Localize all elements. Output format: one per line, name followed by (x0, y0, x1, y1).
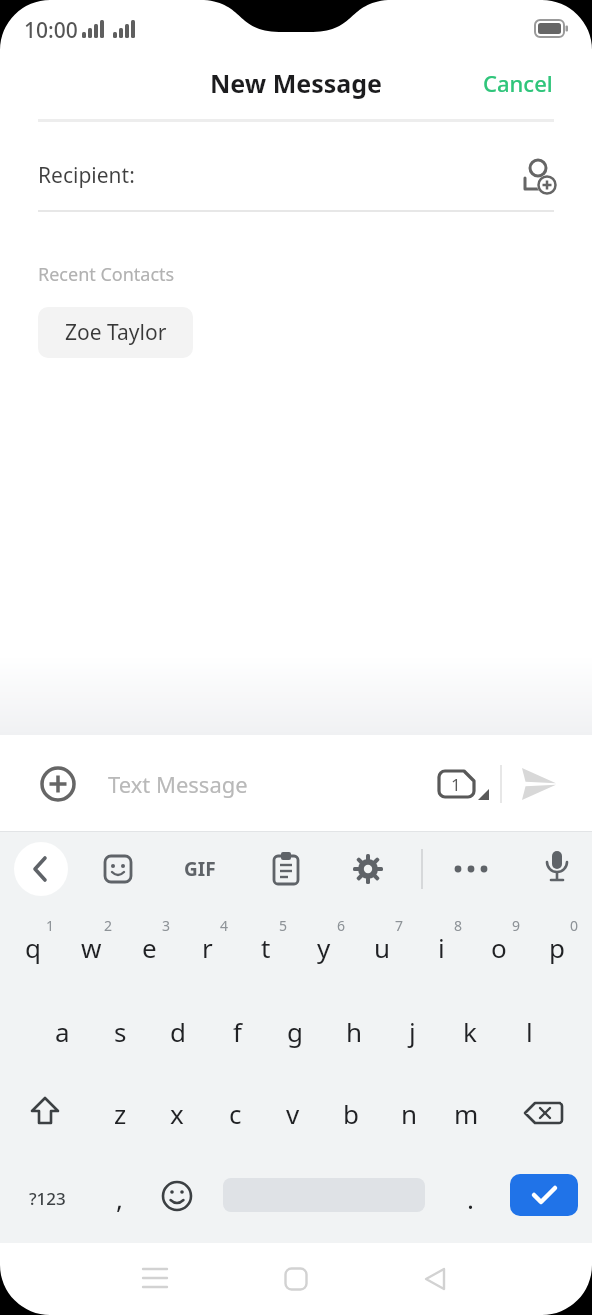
staticText: 2 (104, 916, 113, 935)
staticText: l (526, 1014, 533, 1049)
button[interactable]: o (470, 917, 528, 977)
staticText: 5 (279, 916, 288, 935)
staticText: 4 (220, 916, 229, 935)
staticText: f (233, 1014, 242, 1049)
button[interactable]: v (264, 1083, 322, 1143)
staticText: 1 (451, 773, 461, 796)
button[interactable] (284, 1267, 308, 1291)
staticText: 0 (570, 916, 579, 935)
button[interactable]: i (412, 917, 470, 977)
staticText: d (170, 1014, 186, 1049)
staticText: z (114, 1096, 127, 1131)
staticText: k (463, 1014, 477, 1049)
button[interactable]: Recipient: (30, 148, 562, 203)
button[interactable]: b (322, 1083, 380, 1143)
staticText: GIF (184, 856, 216, 882)
staticText: r (202, 930, 213, 965)
staticText: ?123 (29, 1187, 66, 1210)
button[interactable]: ?123 (14, 1178, 80, 1218)
button[interactable]: c (206, 1083, 264, 1143)
button[interactable] (522, 768, 556, 800)
staticText: 7 (395, 916, 404, 935)
button[interactable]: 1 (437, 768, 491, 802)
staticText: g (287, 1014, 303, 1049)
button[interactable] (353, 854, 383, 884)
button[interactable]: l (500, 1001, 558, 1061)
staticText: n (401, 1096, 418, 1131)
staticText: New Message (210, 66, 382, 100)
button[interactable]: f (208, 1001, 266, 1061)
button[interactable]: k (441, 1001, 499, 1061)
button[interactable] (543, 850, 571, 888)
staticText: Cancel (483, 68, 553, 98)
staticText: . (467, 1181, 474, 1216)
staticText: 8 (454, 916, 463, 935)
button[interactable] (141, 1266, 169, 1290)
button[interactable]: GIF (168, 852, 232, 886)
button[interactable]: , (90, 1168, 148, 1228)
button[interactable]: . (441, 1168, 499, 1228)
button[interactable]: m (437, 1083, 495, 1143)
staticText: p (549, 930, 565, 965)
staticText: x (170, 1096, 184, 1131)
staticText: a (55, 1014, 70, 1049)
staticText: w (81, 930, 102, 965)
staticText: t (261, 930, 271, 965)
staticText: u (374, 930, 391, 965)
button[interactable] (103, 854, 133, 884)
button[interactable]: n (380, 1083, 438, 1143)
button[interactable]: e (120, 917, 178, 977)
button[interactable] (519, 1095, 567, 1131)
button[interactable] (23, 1091, 67, 1135)
staticText: Recent Contacts (38, 262, 175, 287)
staticText: i (438, 930, 445, 965)
staticText: s (114, 1014, 127, 1049)
staticText: m (454, 1096, 479, 1131)
staticText: v (286, 1096, 300, 1131)
button[interactable]: x (148, 1083, 206, 1143)
button[interactable] (518, 156, 556, 194)
button[interactable] (422, 1267, 448, 1291)
staticText: 1 (46, 916, 55, 935)
button[interactable] (452, 861, 492, 877)
button[interactable]: u (353, 917, 411, 977)
button[interactable]: w (62, 917, 120, 977)
button[interactable]: s (91, 1001, 149, 1061)
staticText: Zoe Taylor (65, 318, 167, 347)
button[interactable]: Cancel (443, 60, 553, 106)
button[interactable]: r (178, 917, 236, 977)
staticText: , (116, 1181, 123, 1216)
button[interactable]: p (528, 917, 586, 977)
staticText: Text Message (108, 769, 248, 799)
staticText: b (343, 1096, 359, 1131)
button[interactable] (155, 1174, 199, 1218)
button[interactable]: a (33, 1001, 91, 1061)
button[interactable] (272, 852, 300, 886)
button[interactable] (510, 1174, 578, 1216)
staticText: o (491, 930, 507, 965)
button[interactable]: q (4, 917, 62, 977)
staticText: h (346, 1014, 363, 1049)
button[interactable]: h (325, 1001, 383, 1061)
button[interactable]: Zoe Taylor (38, 307, 193, 358)
staticText: 6 (337, 916, 346, 935)
staticText: 9 (512, 916, 521, 935)
staticText: 10:00 (24, 16, 78, 44)
button[interactable] (14, 842, 68, 896)
button[interactable]: Text Message (108, 735, 358, 832)
staticText: 3 (162, 916, 171, 935)
button[interactable] (40, 766, 76, 802)
button[interactable]: d (149, 1001, 207, 1061)
staticText: q (25, 930, 41, 965)
button[interactable]: t (237, 917, 295, 977)
button[interactable]: g (266, 1001, 324, 1061)
staticText: e (142, 930, 157, 965)
staticText: y (317, 930, 331, 965)
staticText: Recipient: (38, 161, 135, 190)
button[interactable]: j (383, 1001, 441, 1061)
button[interactable]: y (295, 917, 353, 977)
staticText: c (229, 1096, 242, 1131)
staticText: j (409, 1014, 416, 1049)
button[interactable]: z (91, 1083, 149, 1143)
